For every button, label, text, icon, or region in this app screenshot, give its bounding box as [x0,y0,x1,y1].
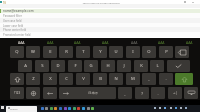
staticText: P [165,49,168,55]
button[interactable]: . [151,87,165,99]
button[interactable]: ? [135,87,149,99]
button[interactable]: 日本語 [69,87,116,99]
button[interactable]: T [76,46,90,58]
staticText: User case field [3,19,22,23]
button[interactable]: Task 8 [77,107,80,110]
staticText: AAA [102,40,109,45]
button[interactable]: , [142,73,156,85]
staticText: T [82,49,85,55]
button[interactable]: AAA [180,39,198,46]
button[interactable]: Symbols [10,87,24,99]
button[interactable]: AAA [125,39,143,46]
button[interactable]: Task 1 [45,107,48,110]
staticText: C [65,76,68,82]
staticText: 日本語 [88,91,98,95]
button[interactable]: Task 11 [91,107,94,110]
button[interactable]: O [142,46,156,58]
button[interactable]: Tab [168,87,182,99]
staticText: , [148,76,150,82]
button[interactable]: Q [10,46,24,58]
button[interactable]: G [84,60,98,72]
button[interactable]: E [43,46,57,58]
staticText: N [114,76,118,82]
button[interactable] [0,18,200,23]
button[interactable]: AAA [68,39,86,46]
button[interactable]: Enter [167,60,190,72]
button[interactable]: AAA [12,39,30,46]
button[interactable]: AAA [41,39,59,46]
button[interactable]: U [109,46,123,58]
button[interactable]: Change language [26,87,40,99]
button[interactable]: I [126,46,140,58]
button[interactable]: Hide keyboard [184,87,198,99]
button[interactable] [0,13,200,18]
button[interactable]: Backspace [175,46,189,58]
button[interactable]: P [159,46,173,58]
staticText: A [24,63,27,69]
staticText: . [165,76,167,82]
button[interactable]: Task 7 [73,107,76,110]
button[interactable]: F [68,60,82,72]
button[interactable]: Task 10 [87,107,90,110]
button[interactable]: AAA [96,39,114,46]
button[interactable]: . [159,73,173,85]
staticText: Q [15,49,19,55]
button[interactable]: Shift [10,73,24,85]
button[interactable]: V [76,73,90,85]
button[interactable]: Search [6,106,37,112]
button[interactable]: B [93,73,107,85]
staticText: Y [99,49,102,55]
button[interactable]: C [59,73,73,85]
staticText: W [31,49,35,55]
button[interactable]: Z [26,73,40,85]
button[interactable]: S [35,60,49,72]
button[interactable]: Task 4 [59,107,62,110]
button[interactable]: H [101,60,115,72]
button[interactable]: Move right [59,87,73,99]
button[interactable]: Task 6 [68,107,71,110]
button[interactable]: Move left [43,87,57,99]
button[interactable]: , [118,87,132,99]
button[interactable]: W [26,46,40,58]
staticText: AAA [186,40,193,45]
staticText: Phone center field [3,28,27,32]
button[interactable] [0,23,200,28]
button[interactable]: Task 9 [82,107,85,110]
button[interactable] [0,27,200,32]
button[interactable]: A [18,60,32,72]
button[interactable]: D [51,60,65,72]
button[interactable]: J [117,60,131,72]
staticText: K [140,63,143,69]
staticText: . [157,91,159,96]
button[interactable] [0,32,200,37]
staticText: L [156,63,159,69]
button[interactable]: N [109,73,123,85]
staticText: ? [141,91,143,96]
staticText: AAA [158,40,165,45]
staticText: J [123,63,125,69]
button[interactable]: Task 5 [64,107,67,110]
button[interactable]: Tap to hide on-screen keyboard [68,1,134,5]
button[interactable]: K [134,60,148,72]
button[interactable]: Y [93,46,107,58]
button[interactable]: Task 2 [50,107,53,110]
button[interactable]: Task 3 [54,107,57,110]
button[interactable] [0,9,200,13]
button[interactable]: Task 0 [41,107,44,110]
button[interactable]: X [43,73,57,85]
staticText: Password filter [3,14,22,18]
button[interactable]: M [126,73,140,85]
staticText: E [49,49,52,55]
button[interactable]: AAA [152,39,170,46]
button[interactable]: Caps lock [175,73,193,85]
button[interactable]: R [59,46,73,58]
button[interactable]: L [150,60,164,72]
